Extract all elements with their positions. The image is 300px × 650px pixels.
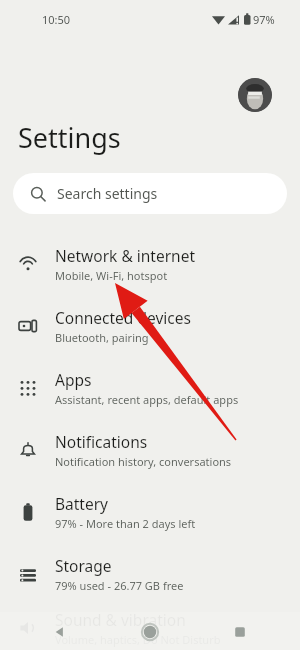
button[interactable]: Connected devices <box>0 295 300 357</box>
staticText: 97% <box>253 12 275 27</box>
staticText: 79% used - 26.77 GB free <box>55 578 184 593</box>
button[interactable]: Back <box>48 620 72 644</box>
button[interactable]: Notifications <box>0 419 300 481</box>
staticText: Notifications <box>55 431 148 452</box>
staticText: Connected devices <box>55 307 191 328</box>
staticText: Volume, haptics, Do Not Disturb <box>55 632 221 647</box>
staticText: Bluetooth, pairing <box>55 330 149 345</box>
button[interactable]: Recent apps <box>228 620 252 644</box>
staticText: Settings <box>18 119 121 156</box>
button[interactable]: Battery <box>0 481 300 543</box>
staticText: Search settings <box>57 184 158 203</box>
button[interactable]: Network & internet <box>0 233 300 295</box>
button[interactable]: Search settings <box>13 173 287 214</box>
staticText: Storage <box>55 555 112 576</box>
staticText: Notification history, conversations <box>55 454 232 469</box>
button[interactable]: Home <box>138 620 162 644</box>
staticText: Network & internet <box>55 245 195 266</box>
button[interactable]: Apps <box>0 357 300 419</box>
button[interactable]: Storage <box>0 543 300 605</box>
staticText: Mobile, Wi-Fi, hotspot <box>55 268 168 283</box>
staticText: Sound & vibration <box>55 609 186 630</box>
staticText: Apps <box>55 369 92 390</box>
button[interactable]: Sound & vibration <box>0 605 300 650</box>
staticText: 97% - More than 2 days left <box>55 516 196 531</box>
staticText: Assistant, recent apps, default apps <box>55 392 239 407</box>
staticText: Battery <box>55 493 109 514</box>
button[interactable]: Account <box>238 78 272 112</box>
staticText: 10:50 <box>42 12 71 27</box>
